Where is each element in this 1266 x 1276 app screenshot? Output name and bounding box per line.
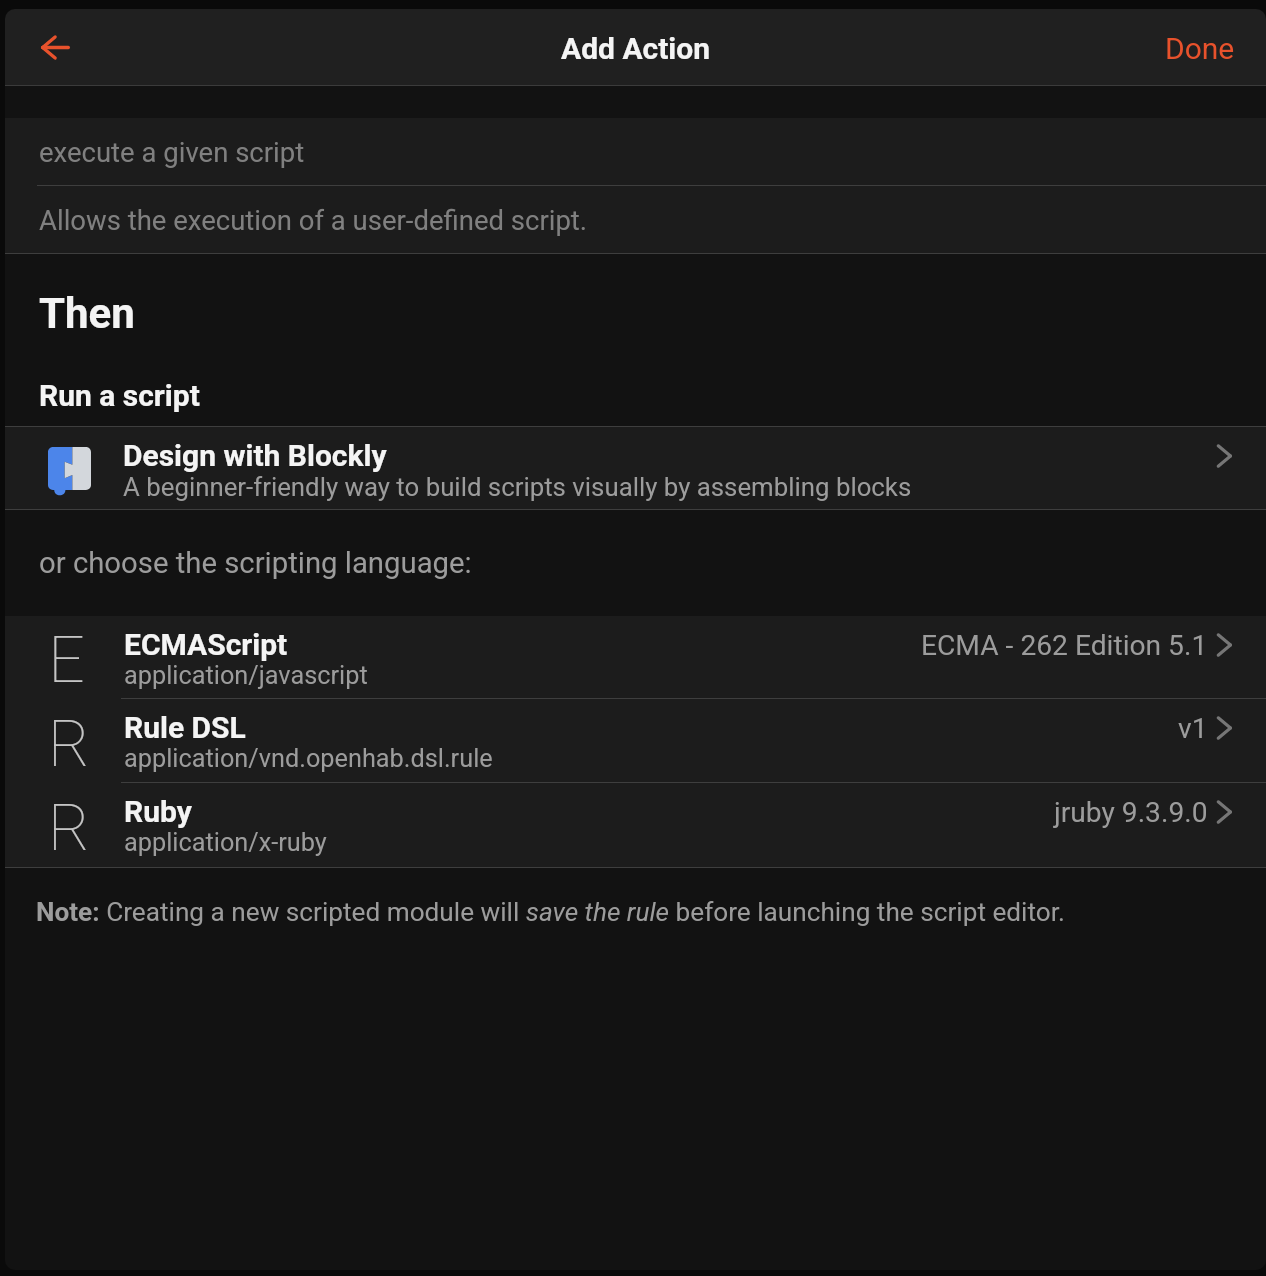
staticText: execute a given script: [39, 136, 305, 168]
staticText: Ruby: [124, 794, 192, 829]
staticText: application/vnd.openhab.dsl.rule: [124, 744, 493, 774]
staticText: application/x-ruby: [124, 828, 327, 858]
staticText: jruby 9.3.9.0: [1054, 796, 1208, 829]
staticText: Done: [1165, 31, 1235, 66]
staticText: E: [48, 623, 85, 698]
staticText: ECMA - 262 Edition 5.1: [921, 629, 1208, 662]
staticText: Allows the execution of a user-defined s…: [39, 204, 588, 236]
staticText: Add Action: [561, 31, 711, 66]
staticText: application/javascript: [124, 661, 368, 691]
button[interactable]: R: [5, 699, 1266, 783]
button[interactable]: execute a given script: [5, 118, 1266, 185]
staticText: R: [48, 791, 90, 866]
button[interactable]: Design with Blockly: [5, 427, 1266, 509]
staticText: Then: [39, 289, 135, 338]
staticText: R: [48, 707, 90, 782]
button[interactable]: R: [5, 783, 1266, 867]
button[interactable]: Allows the execution of a user-defined s…: [5, 186, 1266, 253]
staticText: Run a script: [39, 378, 200, 413]
staticText: or choose the scripting language:: [39, 546, 472, 580]
button[interactable]: Done: [1135, 14, 1266, 81]
staticText: Note: Creating a new scripted module wil…: [36, 897, 1065, 928]
button[interactable]: E: [5, 616, 1266, 699]
staticText: ECMAScript: [124, 627, 288, 662]
staticText: Rule DSL: [124, 710, 246, 745]
staticText: A beginner-friendly way to build scripts…: [123, 472, 912, 502]
staticText: v1: [1178, 712, 1208, 745]
button[interactable]: Back: [25, 18, 85, 78]
staticText: Design with Blockly: [123, 438, 387, 473]
